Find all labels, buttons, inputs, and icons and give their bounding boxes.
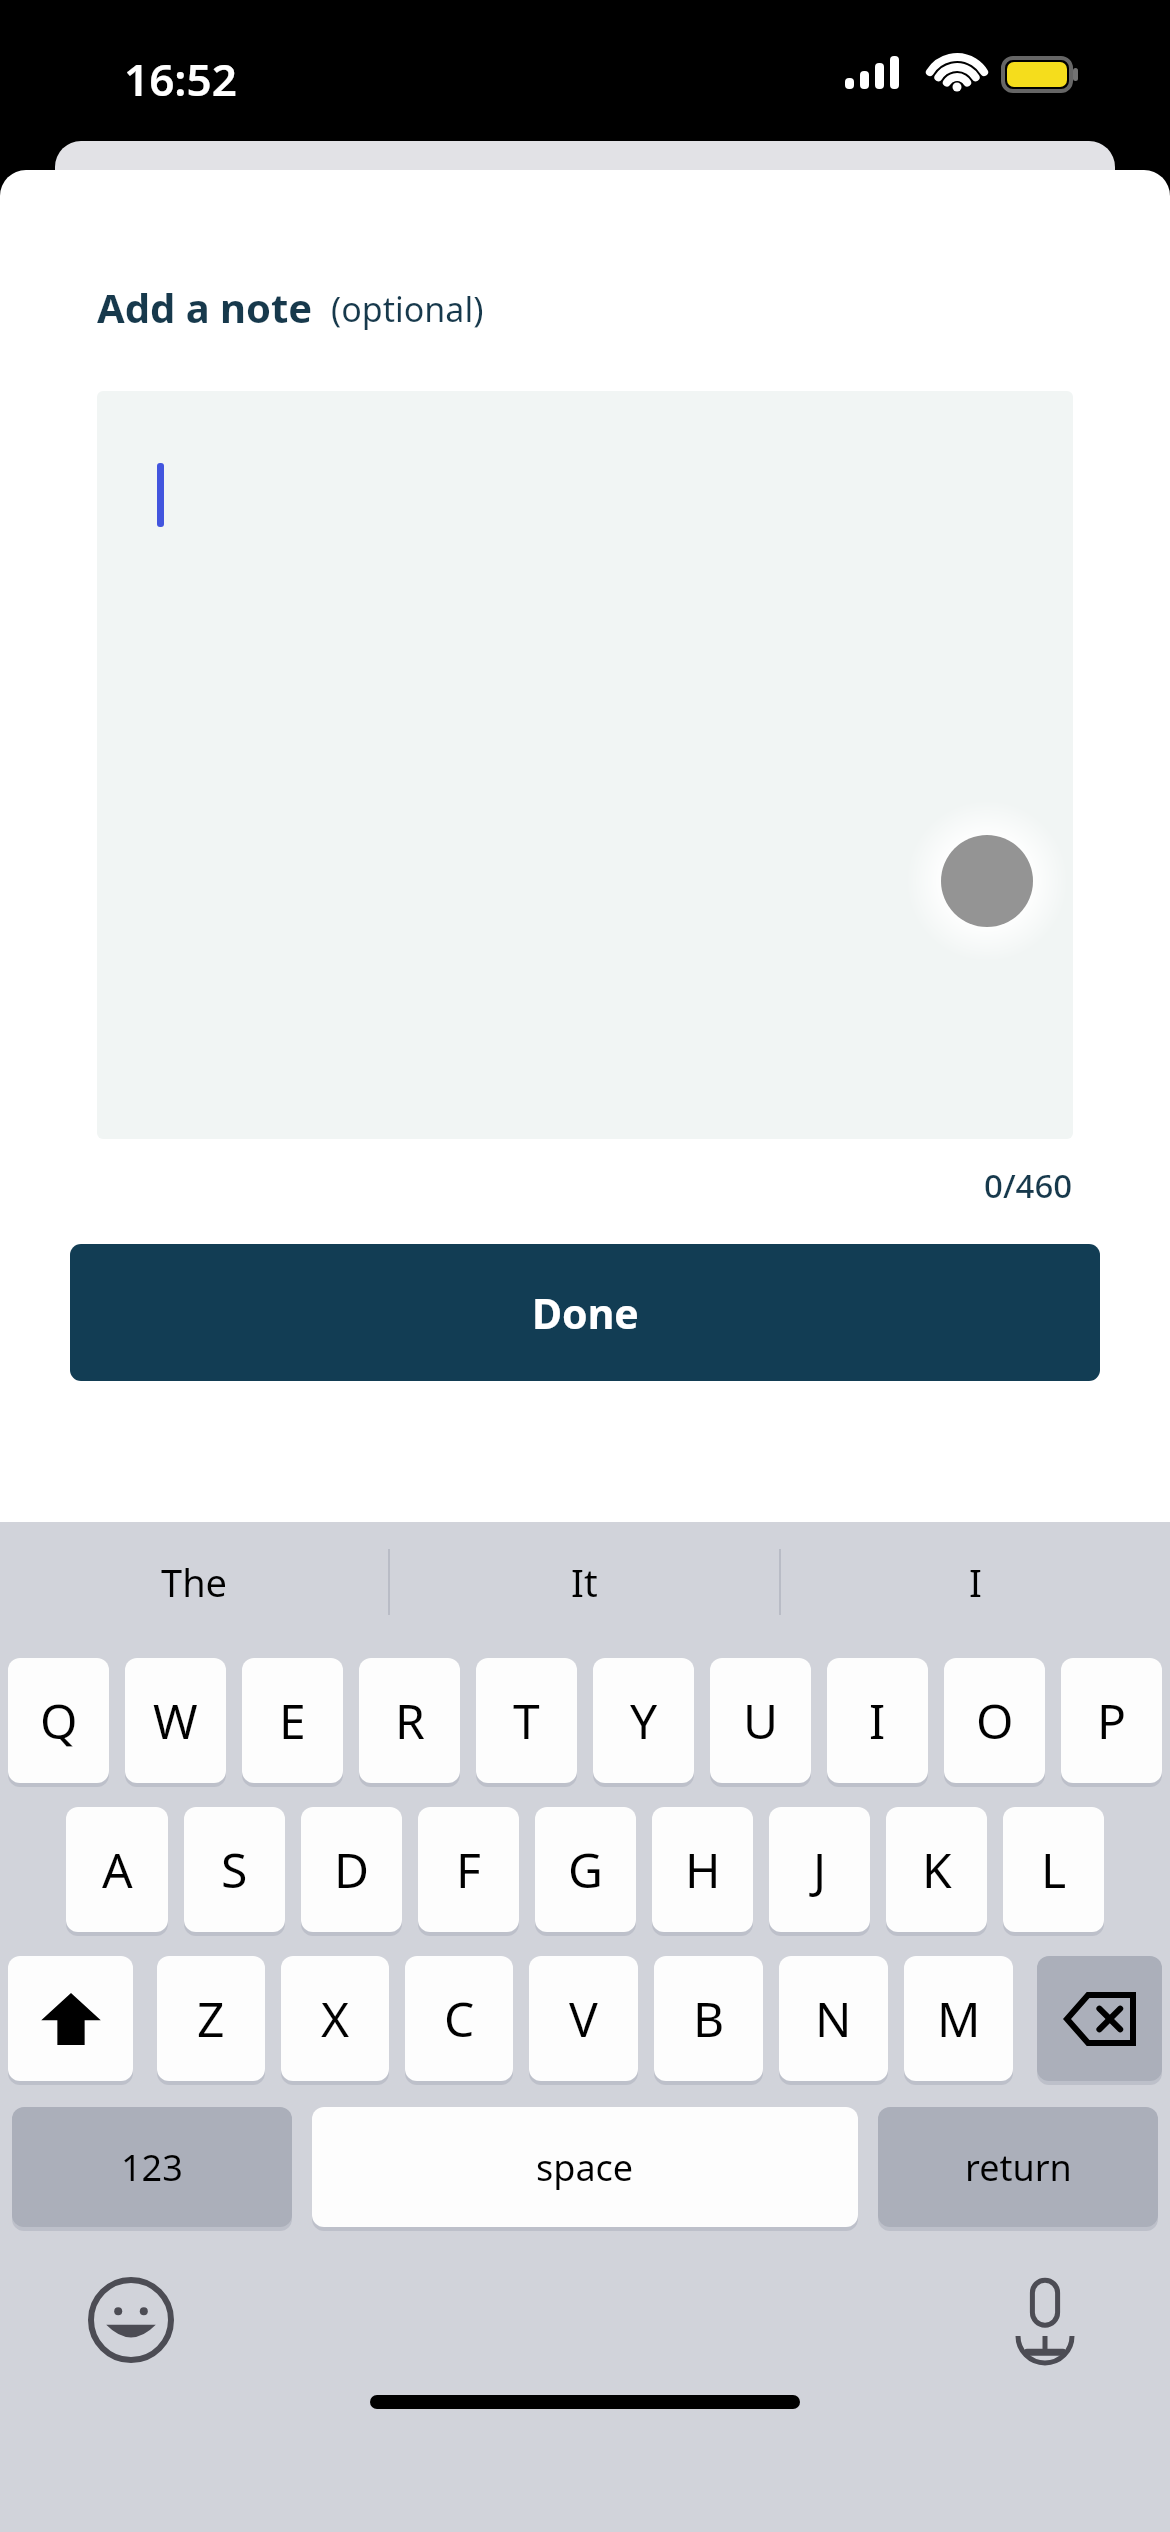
button[interactable]: I (781, 1522, 1170, 1642)
button[interactable]: Shift (8, 1956, 133, 2081)
button[interactable]: E (242, 1658, 343, 1783)
button[interactable]: P (1061, 1658, 1162, 1783)
staticText: G (568, 1837, 603, 1902)
staticText: L (1041, 1837, 1067, 1902)
button[interactable]: It (390, 1522, 779, 1642)
staticText: 0/460 (984, 1163, 1073, 1208)
staticText: E (279, 1688, 306, 1753)
staticText: H (685, 1837, 721, 1902)
staticText: F (456, 1837, 481, 1902)
staticText: I (969, 1556, 982, 1608)
staticText: The (161, 1556, 228, 1608)
staticText: Z (197, 1986, 225, 2051)
button[interactable]: O (944, 1658, 1045, 1783)
staticText: K (922, 1837, 952, 1902)
button[interactable]: X (281, 1956, 389, 2081)
staticText: space (536, 2143, 634, 2192)
staticText: C (444, 1986, 475, 2051)
button[interactable]: U (710, 1658, 811, 1783)
button[interactable]: return (878, 2107, 1158, 2227)
button[interactable]: J (769, 1807, 870, 1932)
staticText: S (221, 1837, 248, 1902)
button[interactable]: I (827, 1658, 928, 1783)
button[interactable]: Delete (1037, 1956, 1162, 2081)
staticText: T (513, 1688, 540, 1753)
button[interactable]: M (904, 1956, 1013, 2081)
button[interactable]: R (359, 1658, 460, 1783)
staticText: 16:52 (124, 49, 237, 109)
button[interactable]: B (654, 1956, 763, 2081)
staticText: R (395, 1688, 425, 1753)
staticText: P (1097, 1688, 1127, 1753)
staticText: Done (532, 1285, 639, 1341)
staticText: X (321, 1986, 350, 2051)
staticText: 123 (121, 2143, 183, 2192)
staticText: It (571, 1556, 598, 1608)
staticText: W (153, 1688, 198, 1753)
staticText: N (815, 1986, 852, 2051)
staticText: Q (40, 1688, 78, 1753)
button[interactable]: Z (157, 1956, 265, 2081)
staticText: U (743, 1688, 779, 1753)
button[interactable]: C (405, 1956, 513, 2081)
staticText: (optional) (331, 286, 484, 332)
button[interactable]: 123 (12, 2107, 292, 2227)
button[interactable]: Emoji (88, 2277, 174, 2363)
button[interactable]: H (652, 1807, 753, 1932)
button[interactable]: T (476, 1658, 577, 1783)
button[interactable] (97, 391, 1073, 1139)
button[interactable]: Q (8, 1658, 109, 1783)
button[interactable]: L (1003, 1807, 1104, 1932)
staticText: A (102, 1837, 133, 1902)
staticText: B (693, 1986, 725, 2051)
button[interactable]: F (418, 1807, 519, 1932)
staticText: return (965, 2143, 1072, 2192)
button[interactable]: Y (593, 1658, 694, 1783)
button[interactable]: Done (70, 1244, 1100, 1381)
staticText: M (937, 1986, 981, 2051)
button[interactable]: S (184, 1807, 285, 1932)
button[interactable]: G (535, 1807, 636, 1932)
button[interactable]: Dictation (1000, 2273, 1090, 2363)
button[interactable]: A (66, 1807, 168, 1932)
button[interactable]: W (125, 1658, 226, 1783)
button[interactable]: D (301, 1807, 402, 1932)
staticText: Y (630, 1688, 658, 1753)
staticText: Add a note (97, 280, 313, 334)
staticText: J (813, 1837, 827, 1902)
button[interactable]: space (312, 2107, 858, 2227)
staticText: V (569, 1986, 598, 2051)
button[interactable]: N (779, 1956, 888, 2081)
staticText: D (334, 1837, 370, 1902)
button[interactable]: The (0, 1522, 388, 1642)
button[interactable]: K (886, 1807, 987, 1932)
button[interactable]: V (529, 1956, 638, 2081)
staticText: I (869, 1688, 886, 1753)
staticText: O (976, 1688, 1014, 1753)
